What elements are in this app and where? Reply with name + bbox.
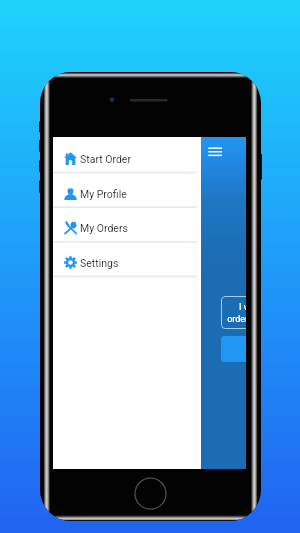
- button[interactable]: I will order food: [221, 296, 246, 329]
- button[interactable]: My Profile: [53, 172, 201, 207]
- button[interactable]: Settings: [53, 241, 201, 276]
- staticText: Settings: [80, 257, 119, 269]
- button[interactable]: [221, 336, 246, 362]
- staticText: My Orders: [80, 222, 128, 234]
- button[interactable]: Start Order: [53, 137, 201, 172]
- staticText: I will order food: [227, 302, 246, 324]
- button[interactable]: Open navigation menu: [208, 141, 232, 163]
- staticText: My Profile: [80, 188, 127, 200]
- staticText: Start Order: [80, 153, 131, 165]
- button[interactable]: My Orders: [53, 206, 201, 241]
